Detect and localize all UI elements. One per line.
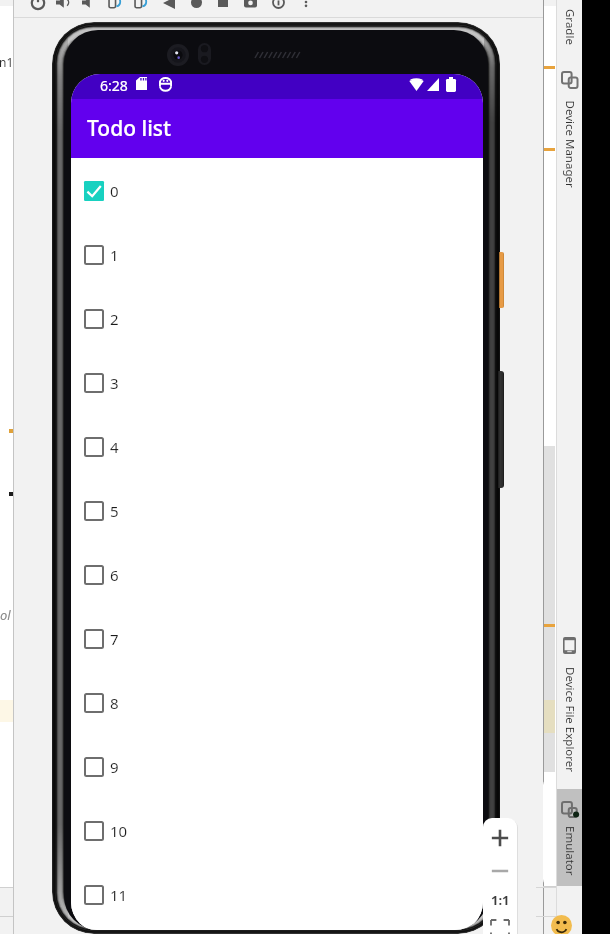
staticText: 10 <box>110 821 128 841</box>
staticText: Todo list <box>87 114 172 143</box>
staticText: Gradle <box>562 9 578 45</box>
button[interactable]: Zoom out <box>488 859 512 883</box>
button[interactable]: Power <box>499 252 504 308</box>
button[interactable]: 5 <box>71 479 483 543</box>
staticText: 7 <box>110 629 119 649</box>
staticText: 6:28 <box>100 76 128 95</box>
button[interactable]: 11 <box>71 863 483 927</box>
staticText: n1 <box>0 54 14 70</box>
button[interactable]: 1 <box>71 223 483 287</box>
staticText: 5 <box>110 501 119 521</box>
staticText: ol <box>0 606 11 624</box>
staticText: 11 <box>110 885 128 905</box>
button[interactable]: 3 <box>71 351 483 415</box>
staticText: 3 <box>110 373 119 393</box>
staticText: 1 <box>110 245 119 265</box>
button[interactable]: 1:1 <box>488 888 512 912</box>
button[interactable]: Zoom in <box>488 826 512 850</box>
button[interactable]: 7 <box>71 607 483 671</box>
staticText: Device Manager <box>561 100 577 188</box>
button[interactable]: 9 <box>71 735 483 799</box>
button[interactable]: 2 <box>71 287 483 351</box>
button[interactable]: 4 <box>71 415 483 479</box>
button[interactable]: 8 <box>71 671 483 735</box>
button[interactable]: Volume <box>498 371 504 488</box>
staticText: Device File Explorer <box>562 667 578 773</box>
button[interactable]: 10 <box>71 799 483 863</box>
staticText: 4 <box>110 437 119 457</box>
staticText: 6 <box>110 565 119 585</box>
staticText: Emulator <box>562 826 578 876</box>
staticText: 9 <box>110 757 119 777</box>
staticText: 1:1 <box>491 891 510 909</box>
staticText: 0 <box>110 181 119 201</box>
staticText: 8 <box>110 693 119 713</box>
button[interactable]: 6 <box>71 543 483 607</box>
button[interactable]: 0 <box>71 159 483 223</box>
button[interactable]: Fit to screen <box>490 919 510 934</box>
staticText: 2 <box>110 309 119 329</box>
